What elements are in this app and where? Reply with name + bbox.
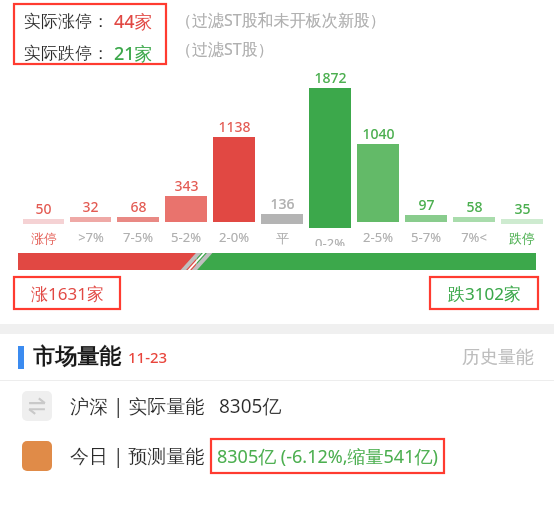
staticText: 跌停 xyxy=(509,230,535,246)
staticText: 1138 xyxy=(218,117,251,136)
staticText: 44家 xyxy=(114,9,153,34)
staticText: 历史量能 xyxy=(462,346,534,369)
staticText: 涨1631家 xyxy=(31,282,104,305)
button[interactable] xyxy=(18,253,536,270)
staticText: 沪深 | 实际量能 xyxy=(70,393,205,419)
staticText: 1040 xyxy=(362,124,395,143)
staticText: （过滤ST股和未开板次新股） xyxy=(176,9,386,31)
staticText: >7% xyxy=(78,228,104,246)
staticText: 5-7% xyxy=(411,228,441,246)
button[interactable]: 历史量能 xyxy=(458,346,538,369)
staticText: 136 xyxy=(270,194,295,213)
staticText: 50 xyxy=(35,199,52,218)
staticText: 2-5% xyxy=(363,228,393,246)
staticText: 21家 xyxy=(114,41,153,66)
staticText: 跌3102家 xyxy=(448,282,521,305)
staticText: 68 xyxy=(130,197,147,216)
staticText: 1872 xyxy=(314,68,347,87)
staticText: 8305亿 xyxy=(219,393,282,419)
staticText: 平 xyxy=(276,230,289,246)
staticText: 实际涨停： xyxy=(24,11,109,32)
button[interactable]: 涨1631家 xyxy=(14,277,120,309)
other: 今日预测 xyxy=(22,441,52,471)
staticText: 市场量能 xyxy=(33,343,121,371)
button[interactable]: 今日预测 xyxy=(0,431,554,481)
staticText: 11-23 xyxy=(128,347,168,367)
staticText: 58 xyxy=(466,197,483,216)
staticText: 97 xyxy=(418,195,435,214)
staticText: 343 xyxy=(174,176,199,195)
staticText: 0-2% xyxy=(315,234,345,246)
staticText: 7-5% xyxy=(123,228,153,246)
staticText: 2-0% xyxy=(219,228,249,246)
staticText: 5-2% xyxy=(171,228,201,246)
staticText: 实际跌停： xyxy=(24,43,109,64)
staticText: （过滤ST股） xyxy=(176,38,274,60)
button[interactable]: 跌3102家 xyxy=(430,277,538,309)
staticText: 今日 | 预测量能 xyxy=(70,443,205,469)
staticText: 涨停 xyxy=(31,230,57,246)
staticText: 8305亿 (-6.12%,缩量541亿) xyxy=(217,444,438,469)
other: 切换量能 xyxy=(22,391,52,421)
staticText: 32 xyxy=(82,197,99,216)
staticText: 35 xyxy=(514,199,531,218)
button[interactable]: 切换量能 xyxy=(0,381,554,431)
staticText: 7%< xyxy=(461,228,487,246)
